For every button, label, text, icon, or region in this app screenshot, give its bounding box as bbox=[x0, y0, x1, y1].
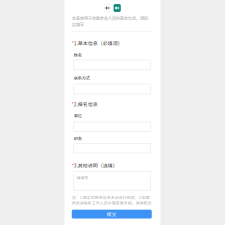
button[interactable]: 分享表单 bbox=[114, 4, 121, 12]
staticText: 职务 bbox=[74, 135, 82, 141]
staticText: * bbox=[72, 101, 74, 107]
button[interactable]: 预览表单 bbox=[104, 4, 111, 12]
staticText: 1.基本信息（必填项） bbox=[74, 39, 123, 46]
staticText: 姓名 bbox=[74, 52, 82, 58]
staticText: 提交 bbox=[107, 211, 117, 218]
staticText: * bbox=[72, 40, 74, 46]
button[interactable] bbox=[74, 84, 151, 94]
button[interactable] bbox=[74, 122, 151, 131]
staticText: 请填写 bbox=[76, 174, 88, 180]
button[interactable] bbox=[74, 143, 151, 153]
staticText: 2.报名信息 bbox=[74, 100, 98, 107]
button[interactable]: 提交 bbox=[72, 210, 152, 218]
button[interactable]: 请填写 bbox=[74, 171, 151, 190]
staticText: 本表单用于收集参会人员的基本信息，请如实填写 bbox=[72, 15, 148, 28]
staticText: 联系方式 bbox=[74, 75, 90, 81]
staticText: 注：1.提交后报名信息无法自行修改；2.如需修改请联系工作人员办理变更手续，谢谢… bbox=[72, 194, 152, 206]
staticText: 3.其他说明（选填） bbox=[74, 162, 118, 169]
staticText: 单位 bbox=[74, 112, 82, 119]
button[interactable] bbox=[74, 60, 151, 70]
staticText: * bbox=[72, 162, 74, 169]
